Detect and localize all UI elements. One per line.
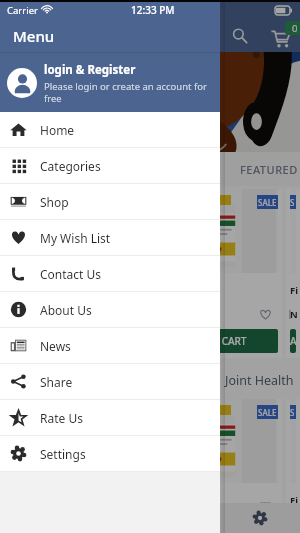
button[interactable]: Categories: [0, 148, 220, 183]
button[interactable]: Share: [0, 364, 220, 399]
staticText: Fish Oil: [151, 284, 186, 297]
staticText: Contact Us: [40, 266, 102, 282]
staticText: 0: [292, 22, 298, 35]
staticText: Rate Us: [40, 410, 83, 426]
staticText: SALE: [258, 197, 277, 208]
button[interactable]: Search: [225, 21, 255, 51]
button[interactable]: Cart: [263, 20, 297, 52]
staticText: SALE: [258, 407, 277, 418]
button[interactable]: Settings: [0, 436, 220, 471]
staticText: login & Register: [44, 62, 136, 78]
staticText: FEATURED: [240, 162, 298, 177]
button[interactable]: SALE: [286, 189, 300, 358]
staticText: Menu: [13, 26, 55, 46]
button[interactable]: SALE: [286, 399, 300, 503]
button[interactable]: ADD TO CART: [151, 329, 278, 353]
staticText: 12:33 PM: [131, 3, 175, 17]
staticText: Settings: [40, 446, 86, 462]
staticText: SALE: [290, 197, 296, 208]
staticText: Fish Oil: [290, 494, 300, 503]
staticText: Home: [40, 122, 75, 138]
staticText: News: [40, 338, 71, 354]
button[interactable]: Contact Us: [0, 256, 220, 291]
staticText: Joint Health: [225, 372, 294, 389]
button[interactable]: SALE: [147, 189, 282, 358]
staticText: Please login or create an account for fr…: [44, 80, 220, 104]
button[interactable]: SALE: [147, 399, 282, 503]
button[interactable]: login & Register: [0, 53, 220, 112]
button[interactable]: My Wish List: [0, 220, 220, 255]
staticText: Share: [40, 374, 73, 390]
staticText: My Wish List: [40, 230, 111, 246]
button[interactable]: ADD TO CART: [290, 329, 296, 353]
staticText: ADD TO CART: [290, 334, 296, 348]
button[interactable]: Home: [0, 112, 220, 147]
button[interactable]: Rate Us: [0, 400, 220, 435]
staticText: Carrier: [7, 4, 38, 17]
staticText: Categories: [40, 158, 101, 174]
button[interactable]: Shop: [0, 184, 220, 219]
staticText: ADD TO CART: [182, 334, 247, 348]
staticText: Fish Oil: [290, 284, 300, 297]
button[interactable]: Settings: [245, 503, 275, 533]
button[interactable]: News: [0, 328, 220, 363]
staticText: About Us: [40, 302, 92, 318]
button[interactable]: About Us: [0, 292, 220, 327]
staticText: SALE: [290, 407, 296, 418]
staticText: Shop: [40, 194, 69, 210]
